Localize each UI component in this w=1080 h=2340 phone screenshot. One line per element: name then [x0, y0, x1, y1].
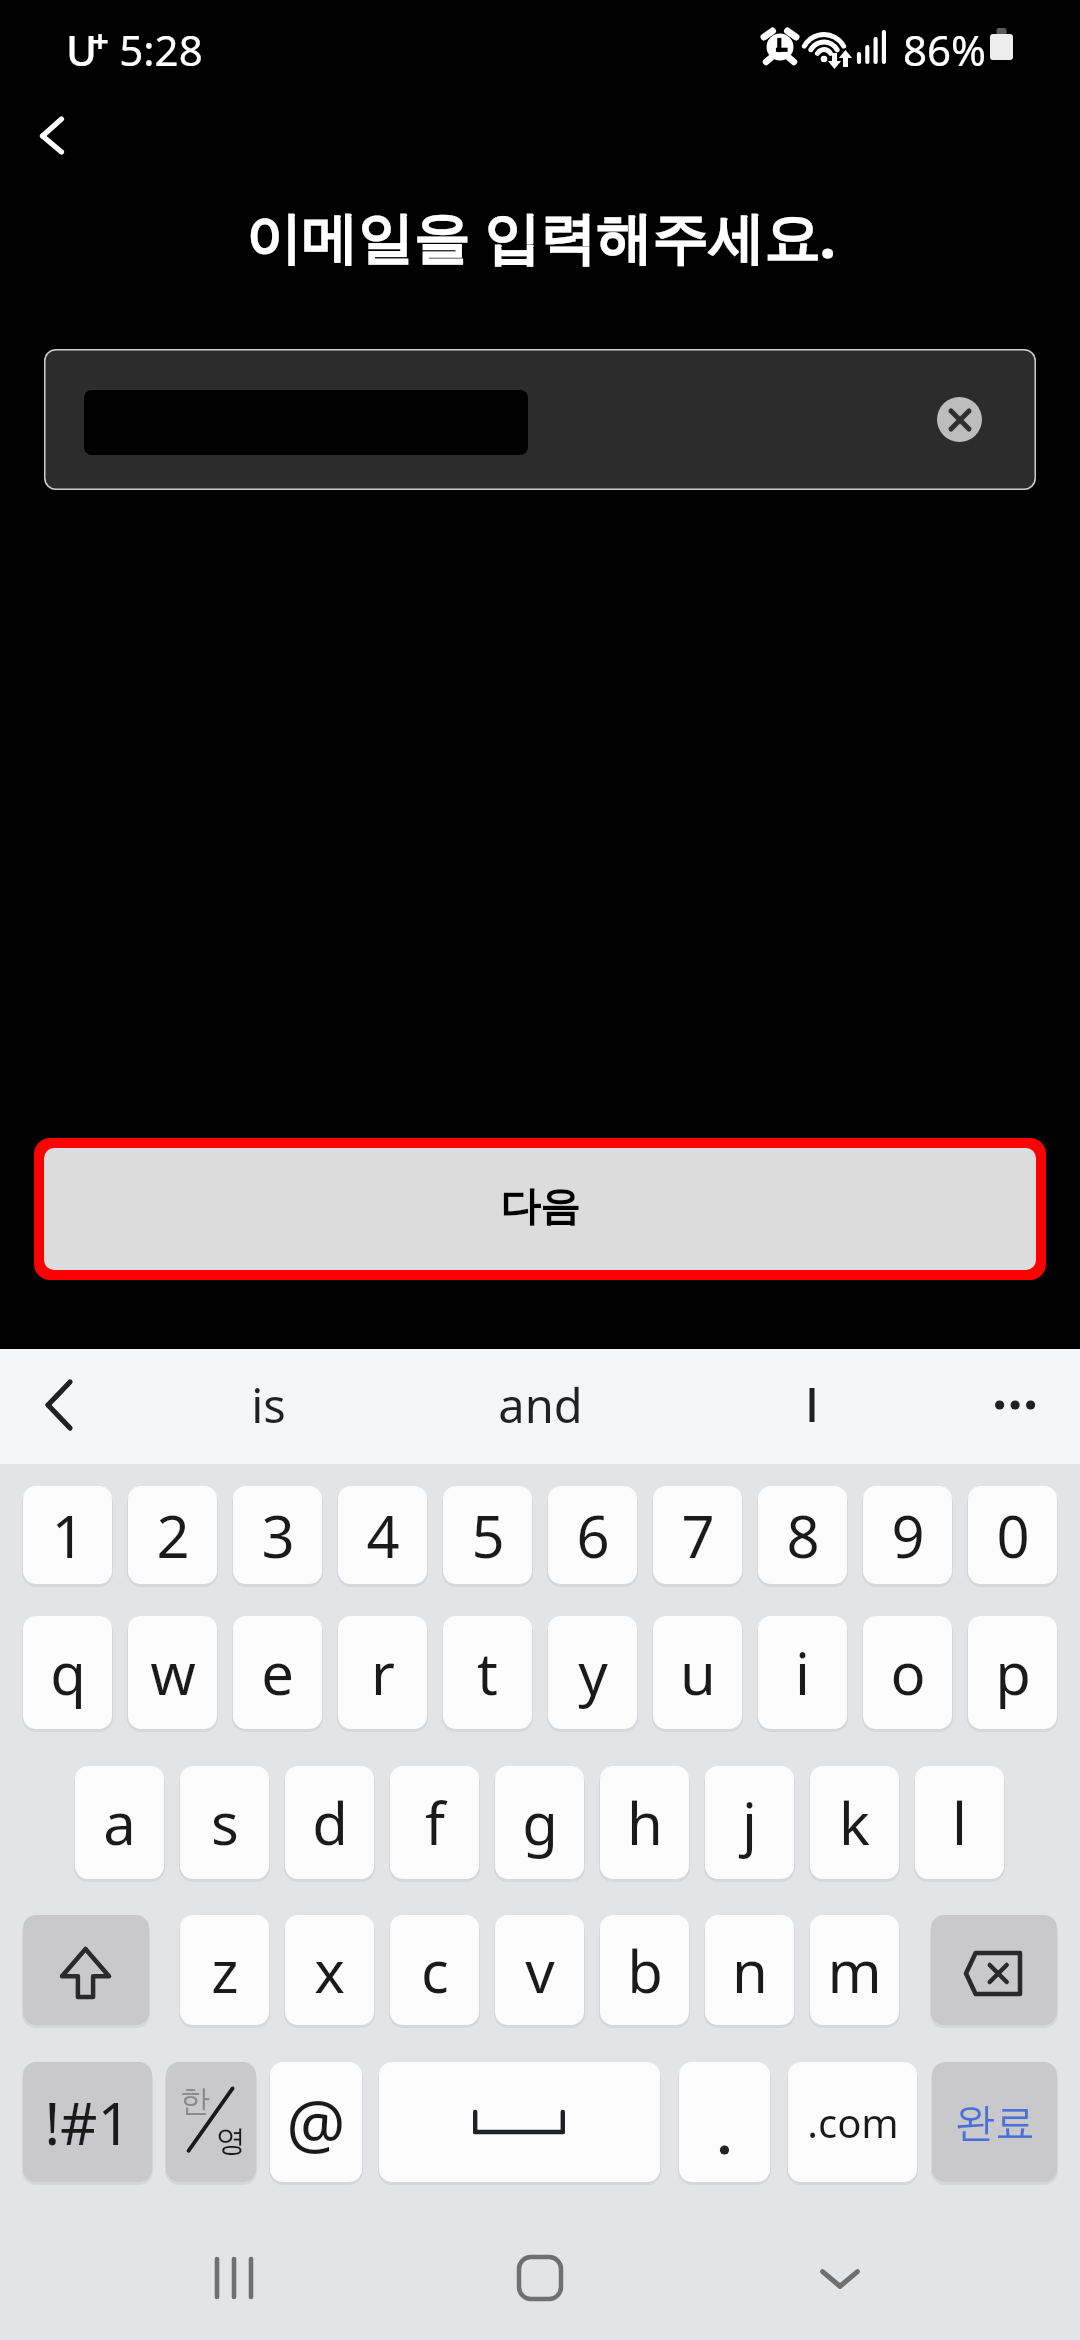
staticText: 5:28: [119, 21, 203, 78]
staticText: c: [421, 1931, 449, 2010]
button[interactable]: z: [180, 1915, 269, 2025]
button[interactable]: g: [495, 1766, 584, 1879]
staticText: 7: [681, 1496, 715, 1575]
button[interactable]: p: [968, 1616, 1057, 1729]
staticText: n: [732, 1931, 768, 2010]
staticText: o: [890, 1633, 926, 1712]
button[interactable]: h: [600, 1766, 689, 1879]
button[interactable]: a: [75, 1766, 164, 1879]
staticText: .com: [807, 2095, 899, 2149]
staticText: 5: [471, 1496, 505, 1575]
button[interactable]: @: [270, 2062, 362, 2182]
button[interactable]: b: [600, 1915, 689, 2025]
button[interactable]: u: [653, 1616, 742, 1729]
staticText: !#1: [44, 2083, 131, 2162]
staticText: e: [261, 1633, 294, 1712]
staticText: 4: [366, 1496, 400, 1575]
staticText: 다음: [500, 1181, 580, 1231]
staticText: p: [995, 1633, 1031, 1712]
button[interactable]: [679, 2062, 770, 2182]
button[interactable]: .com: [788, 2062, 917, 2182]
staticText: 8: [786, 1496, 820, 1575]
staticText: l: [952, 1783, 967, 1862]
button[interactable]: Back: [12, 100, 94, 182]
staticText: j: [742, 1783, 757, 1862]
button[interactable]: d: [285, 1766, 374, 1879]
staticText: g: [522, 1783, 558, 1862]
staticText: q: [50, 1633, 86, 1712]
button[interactable]: 1: [23, 1486, 112, 1584]
button[interactable]: f: [390, 1766, 479, 1879]
button[interactable]: i: [758, 1616, 847, 1729]
staticText: i: [795, 1633, 810, 1712]
button[interactable]: s: [180, 1766, 269, 1879]
button[interactable]: is: [178, 1349, 358, 1460]
staticText: 0: [996, 1496, 1030, 1575]
staticText: is: [251, 1373, 286, 1437]
staticText: y: [578, 1633, 608, 1712]
staticText: w: [150, 1633, 196, 1712]
button[interactable]: !#1: [23, 2062, 152, 2182]
button[interactable]: Korean English toggle: [166, 2062, 256, 2182]
staticText: f: [425, 1783, 445, 1862]
button[interactable]: 다음: [34, 1138, 1046, 1280]
button[interactable]: x: [285, 1915, 374, 2025]
staticText: 86%: [903, 21, 986, 78]
staticText: x: [314, 1931, 345, 2010]
staticText: h: [627, 1783, 663, 1862]
staticText: u: [680, 1633, 716, 1712]
staticText: a: [103, 1783, 136, 1862]
button[interactable]: j: [705, 1766, 794, 1879]
button[interactable]: 3: [233, 1486, 322, 1584]
staticText: 2: [156, 1496, 190, 1575]
button[interactable]: 4: [338, 1486, 427, 1584]
button[interactable]: q: [23, 1616, 112, 1729]
button[interactable]: Clear: [44, 349, 1036, 490]
button[interactable]: 5: [443, 1486, 532, 1584]
staticText: U: [66, 21, 97, 78]
button[interactable]: w: [128, 1616, 217, 1729]
button[interactable]: 0: [968, 1486, 1057, 1584]
staticText: v: [525, 1931, 555, 2010]
button[interactable]: l: [915, 1766, 1004, 1879]
staticText: k: [839, 1783, 870, 1862]
button[interactable]: Shift: [23, 1915, 149, 2025]
button[interactable]: y: [548, 1616, 637, 1729]
button[interactable]: Hide keyboard: [790, 2238, 890, 2318]
staticText: s: [211, 1783, 239, 1862]
button[interactable]: Clear: [937, 397, 982, 442]
button[interactable]: 9: [863, 1486, 952, 1584]
button[interactable]: r: [338, 1616, 427, 1729]
button[interactable]: More suggestions: [988, 1375, 1048, 1435]
button[interactable]: Backspace: [931, 1915, 1057, 2025]
staticText: 6: [576, 1496, 610, 1575]
button[interactable]: 7: [653, 1486, 742, 1584]
button[interactable]: k: [810, 1766, 899, 1879]
staticText: z: [211, 1931, 239, 2010]
button[interactable]: Previous suggestions: [20, 1366, 98, 1444]
staticText: 9: [891, 1496, 925, 1575]
staticText: t: [477, 1633, 498, 1712]
button[interactable]: and: [450, 1349, 630, 1460]
button[interactable]: m: [810, 1915, 899, 2025]
button[interactable]: [379, 2062, 660, 2182]
staticText: and: [498, 1373, 583, 1437]
button[interactable]: t: [443, 1616, 532, 1729]
button[interactable]: 2: [128, 1486, 217, 1584]
staticText: +: [91, 20, 109, 61]
button[interactable]: v: [495, 1915, 584, 2025]
button[interactable]: o: [863, 1616, 952, 1729]
button[interactable]: I: [722, 1349, 902, 1460]
button[interactable]: 6: [548, 1486, 637, 1584]
staticText: @: [286, 2077, 346, 2167]
button[interactable]: 8: [758, 1486, 847, 1584]
staticText: d: [312, 1783, 348, 1862]
button[interactable]: 완료: [932, 2062, 1057, 2182]
button[interactable]: n: [705, 1915, 794, 2025]
button[interactable]: Home: [490, 2238, 590, 2318]
button[interactable]: Recents: [166, 2238, 306, 2318]
staticText: r: [371, 1633, 395, 1712]
button[interactable]: c: [390, 1915, 479, 2025]
button[interactable]: e: [233, 1616, 322, 1729]
staticText: 영: [216, 2122, 246, 2160]
